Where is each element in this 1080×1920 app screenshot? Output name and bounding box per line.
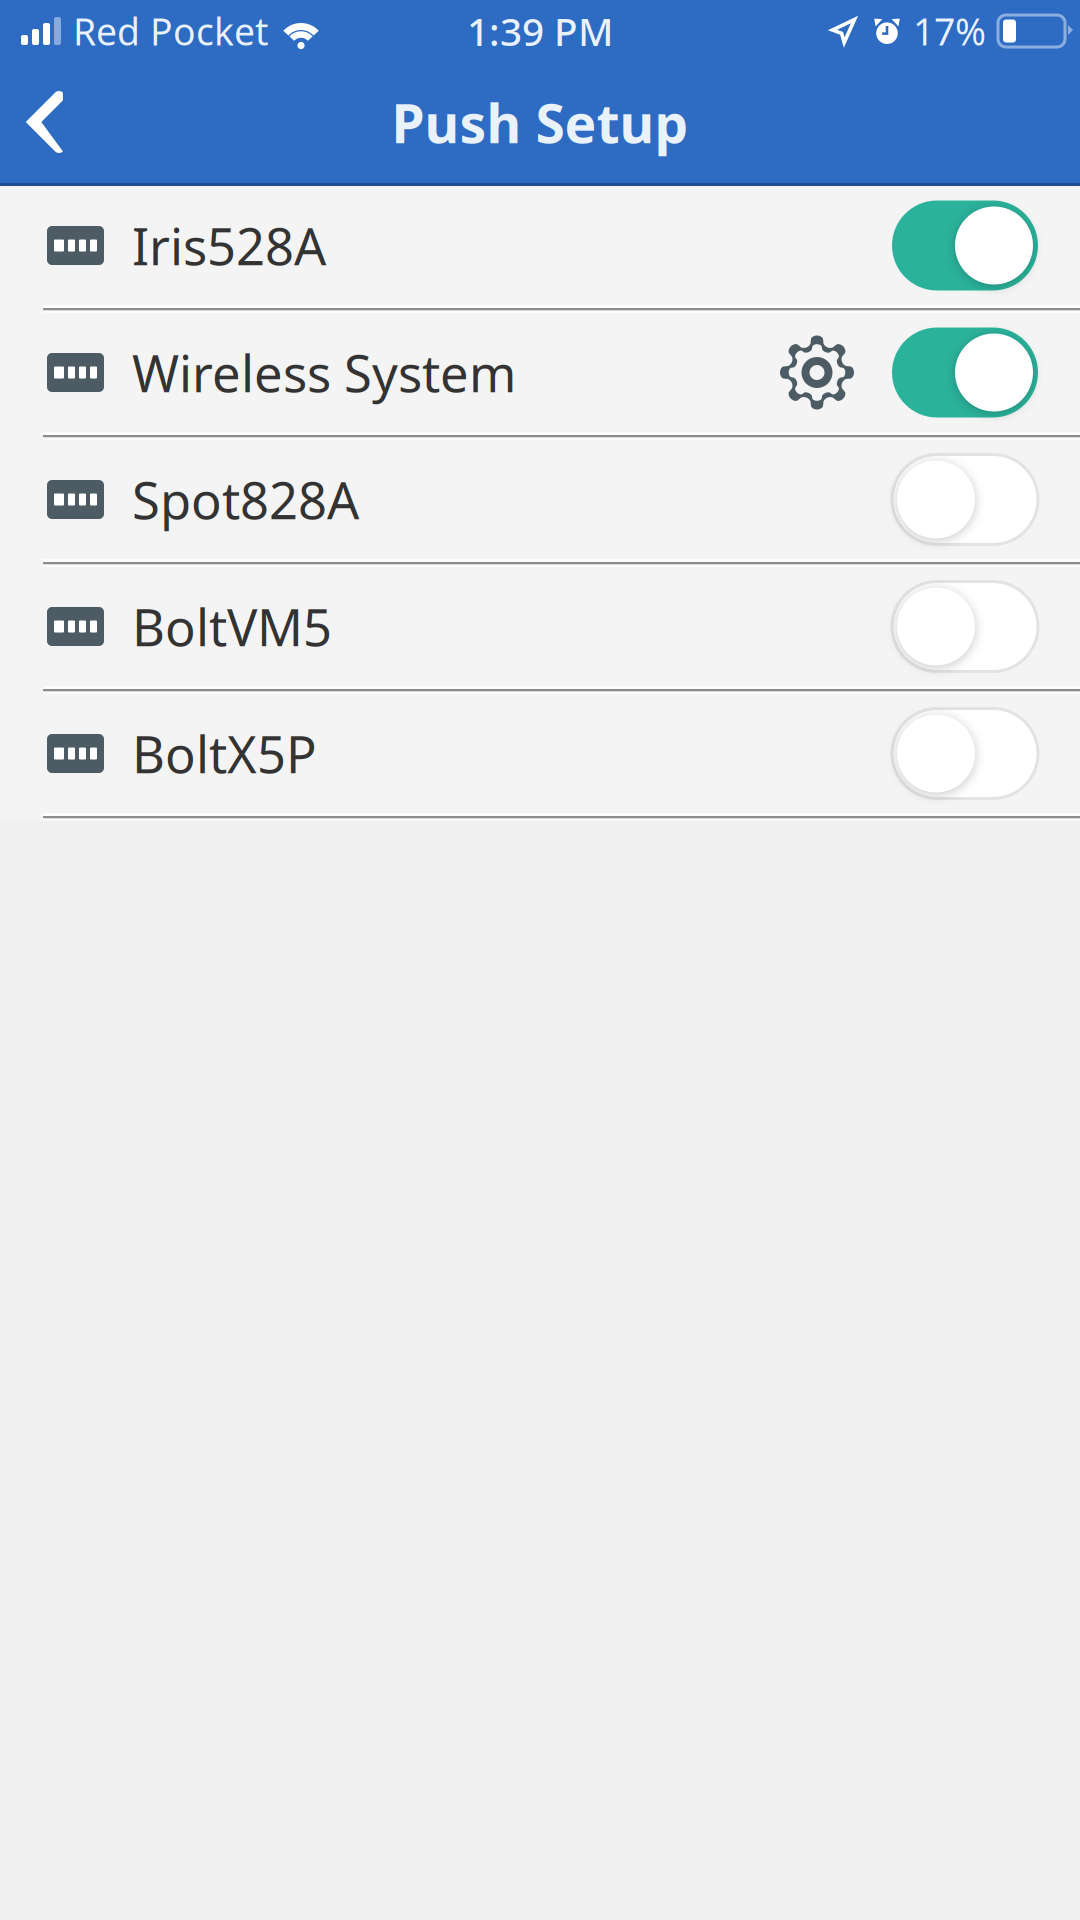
staticText: Wireless System [132, 339, 516, 406]
button[interactable]: Back [0, 62, 90, 183]
staticText: Push Setup [391, 87, 688, 158]
staticText: 17% [913, 6, 986, 56]
button[interactable]: Wireless System [0, 313, 1080, 432]
button[interactable]: Iris528A [0, 186, 1080, 305]
staticText: Red Pocket [73, 6, 268, 56]
staticText: BoltVM5 [132, 593, 332, 660]
staticText: Iris528A [132, 212, 326, 279]
button[interactable]: Spot828A [0, 440, 1080, 559]
staticText: 1:39 PM [467, 5, 613, 57]
staticText: BoltX5P [132, 720, 317, 787]
button[interactable]: BoltVM5 [0, 567, 1080, 686]
staticText: Spot828A [132, 466, 359, 533]
button[interactable]: BoltX5P [0, 694, 1080, 813]
